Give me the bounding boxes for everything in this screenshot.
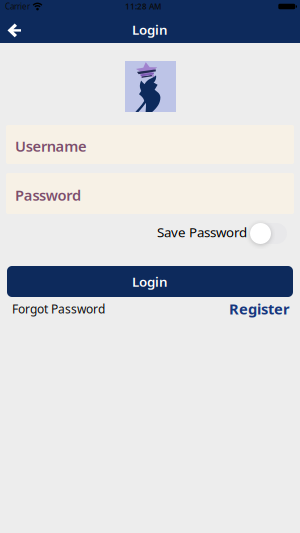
staticText: Login: [132, 21, 168, 38]
staticText: Register: [229, 299, 290, 318]
staticText: Save Password: [157, 223, 247, 241]
staticText: Carrier: [5, 1, 30, 12]
staticText: 11:28 AM: [125, 1, 161, 12]
staticText: Username: [15, 136, 87, 156]
staticText: Login: [132, 273, 168, 290]
button[interactable]: Register: [229, 299, 290, 318]
button[interactable]: Username: [6, 125, 294, 164]
button[interactable]: Login: [7, 266, 293, 297]
staticText: Password: [15, 185, 81, 205]
button[interactable]: Back: [0, 21, 21, 35]
button[interactable]: Forgot Password: [12, 301, 105, 317]
button[interactable]: Password: [6, 173, 294, 214]
button[interactable]: Save Password: [250, 223, 287, 244]
staticText: Forgot Password: [12, 301, 105, 317]
